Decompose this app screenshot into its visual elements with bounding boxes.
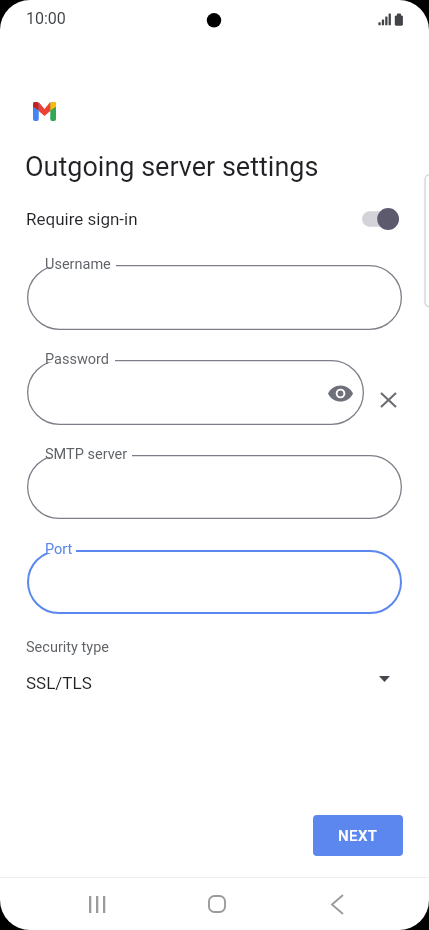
staticText: SSL/TLS: [26, 673, 92, 693]
button[interactable]: Password: [27, 360, 364, 425]
button[interactable]: Show password: [320, 373, 360, 413]
staticText: NEXT: [338, 827, 378, 845]
button[interactable]: Home: [193, 880, 241, 928]
staticText: Username: [45, 256, 111, 273]
staticText: 10:00: [26, 9, 66, 28]
button[interactable]: Back: [313, 880, 361, 928]
button[interactable]: Clear password: [368, 379, 409, 420]
staticText: Security type: [26, 639, 109, 656]
button[interactable]: Username: [27, 265, 402, 330]
staticText: SMTP server: [45, 446, 128, 463]
staticText: Password: [45, 351, 110, 368]
button[interactable]: Security type: [0, 632, 429, 698]
button[interactable]: NEXT: [313, 815, 403, 856]
button[interactable]: Recent apps: [73, 880, 121, 928]
button[interactable]: Require sign-in: [0, 198, 429, 240]
staticText: Outgoing server settings: [25, 151, 319, 183]
staticText: Require sign-in: [26, 209, 138, 229]
button[interactable]: Port: [27, 550, 402, 614]
staticText: Port: [45, 541, 73, 558]
button[interactable]: SMTP server: [27, 455, 402, 519]
